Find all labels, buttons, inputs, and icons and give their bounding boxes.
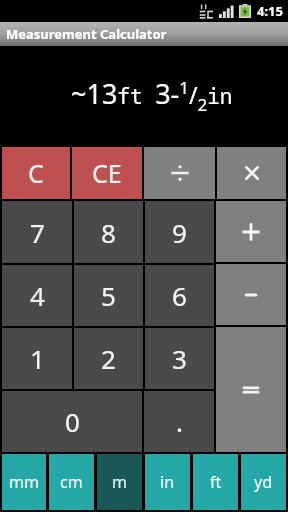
button[interactable]: 1 bbox=[2, 328, 72, 389]
button[interactable]: . bbox=[144, 391, 214, 452]
staticText: C bbox=[28, 156, 44, 190]
staticText: 6 bbox=[172, 278, 187, 313]
staticText: mm bbox=[9, 471, 39, 493]
staticText: 0 bbox=[65, 404, 80, 439]
button[interactable]: Equals bbox=[216, 327, 286, 452]
staticText: Measurement Calculator bbox=[6, 25, 167, 43]
button[interactable]: mm bbox=[2, 454, 46, 510]
staticText: ~13ft 3-1/2in bbox=[71, 75, 233, 116]
staticText: 5 bbox=[101, 278, 116, 313]
button[interactable]: cm bbox=[49, 454, 94, 510]
button[interactable]: CE bbox=[72, 147, 142, 199]
staticText: . bbox=[176, 404, 183, 439]
button[interactable]: 4 bbox=[2, 265, 72, 326]
button[interactable]: Multiply bbox=[217, 147, 286, 199]
staticText: 2 bbox=[101, 341, 116, 376]
staticText: 3 bbox=[172, 341, 187, 376]
button[interactable]: Minus bbox=[216, 264, 286, 325]
staticText: CE bbox=[92, 156, 122, 190]
staticText: ft bbox=[210, 471, 222, 493]
staticText: yd bbox=[254, 471, 273, 493]
staticText: 4:15 bbox=[257, 2, 283, 20]
button[interactable]: 8 bbox=[74, 201, 143, 263]
button[interactable]: Divide bbox=[144, 147, 215, 199]
button[interactable]: m bbox=[97, 454, 142, 510]
staticText: cm bbox=[60, 471, 83, 493]
button[interactable]: 2 bbox=[74, 328, 143, 389]
button[interactable]: Plus bbox=[216, 201, 286, 262]
staticText: 1 bbox=[30, 341, 45, 376]
staticText: 8 bbox=[101, 215, 116, 250]
button[interactable]: yd bbox=[241, 454, 286, 510]
button[interactable]: 7 bbox=[2, 201, 72, 263]
staticText: 7 bbox=[30, 215, 45, 250]
staticText: m bbox=[112, 471, 127, 493]
button[interactable]: in bbox=[145, 454, 190, 510]
staticText: in bbox=[160, 471, 175, 493]
button[interactable]: 0 bbox=[2, 391, 142, 452]
button[interactable]: C bbox=[2, 147, 70, 199]
button[interactable]: 3 bbox=[145, 328, 214, 389]
button[interactable]: 6 bbox=[145, 265, 214, 326]
staticText: 9 bbox=[172, 215, 187, 250]
button[interactable]: 9 bbox=[145, 201, 214, 263]
staticText: 4 bbox=[30, 278, 45, 313]
button[interactable]: ft bbox=[193, 454, 238, 510]
button[interactable]: 5 bbox=[74, 265, 143, 326]
